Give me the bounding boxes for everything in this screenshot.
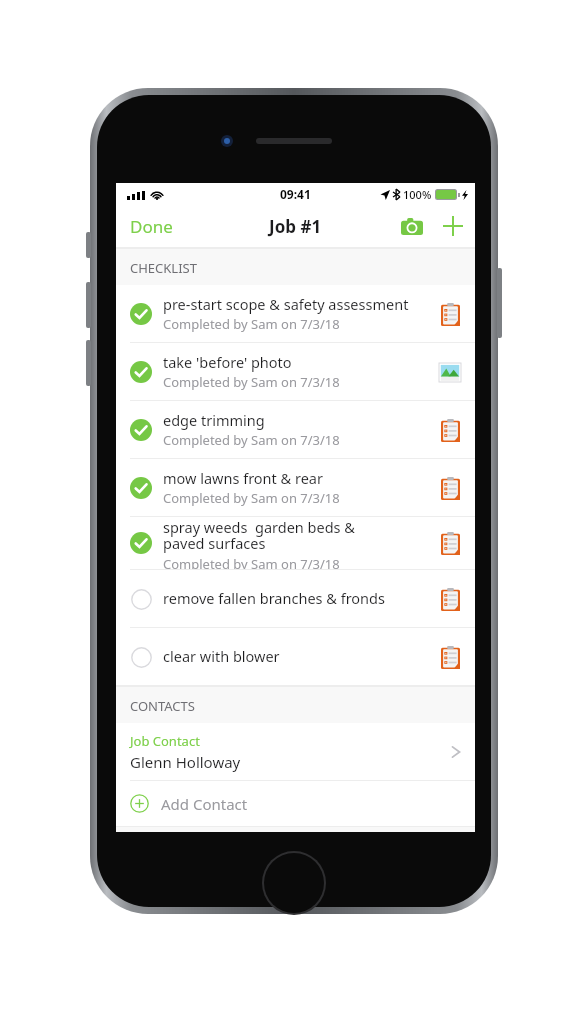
staticText: clear with blower — [163, 646, 280, 666]
staticText: spray weeds garden beds & paved surfaces — [163, 517, 355, 554]
staticText: Job Contact — [130, 732, 200, 750]
staticText: Job #1 — [269, 215, 322, 238]
staticText: 09:41 — [280, 186, 311, 202]
button[interactable]: Add Contact — [116, 781, 475, 826]
staticText: CHECKLIST — [130, 259, 197, 277]
button[interactable]: Add item — [431, 208, 475, 244]
staticText: Done — [130, 215, 173, 238]
staticText: Completed by Sam on 7/3/18 — [163, 315, 340, 333]
button[interactable]: Open form — [433, 526, 467, 560]
button[interactable]: Open form — [433, 413, 467, 447]
button[interactable]: Open form — [433, 297, 467, 331]
button[interactable]: Open form — [433, 471, 467, 505]
button[interactable]: mow lawns front & rear — [116, 459, 475, 516]
button[interactable]: Open form — [433, 582, 467, 616]
staticText: 100% — [403, 187, 432, 202]
button[interactable]: Take photo — [393, 210, 431, 243]
button[interactable]: Done — [116, 207, 187, 246]
staticText: edge trimming — [163, 410, 265, 430]
staticText: Completed by Sam on 7/3/18 — [163, 489, 340, 507]
button[interactable]: spray weeds garden beds & paved surfaces — [116, 517, 475, 569]
button[interactable]: pre-start scope & safety assessment — [116, 285, 475, 342]
button[interactable]: edge trimming — [116, 401, 475, 458]
button[interactable]: take 'before' photo — [116, 343, 475, 400]
staticText: remove fallen branches & fronds — [163, 588, 385, 608]
staticText: Completed by Sam on 7/3/18 — [163, 431, 340, 449]
staticText: Add Contact — [161, 794, 248, 814]
staticText: Completed by Sam on 7/3/18 — [163, 555, 340, 569]
button[interactable]: Job Contact — [116, 723, 475, 780]
button[interactable]: Open photo — [433, 355, 467, 389]
staticText: mow lawns front & rear — [163, 468, 323, 488]
button[interactable]: clear with blower — [116, 628, 475, 685]
button[interactable]: remove fallen branches & fronds — [116, 570, 475, 627]
staticText: Glenn Holloway — [130, 752, 241, 772]
staticText: pre-start scope & safety assessment — [163, 294, 409, 314]
staticText: take 'before' photo — [163, 352, 292, 372]
staticText: CONTACTS — [130, 697, 195, 715]
button[interactable]: Open form — [433, 640, 467, 674]
staticText: Completed by Sam on 7/3/18 — [163, 373, 340, 391]
